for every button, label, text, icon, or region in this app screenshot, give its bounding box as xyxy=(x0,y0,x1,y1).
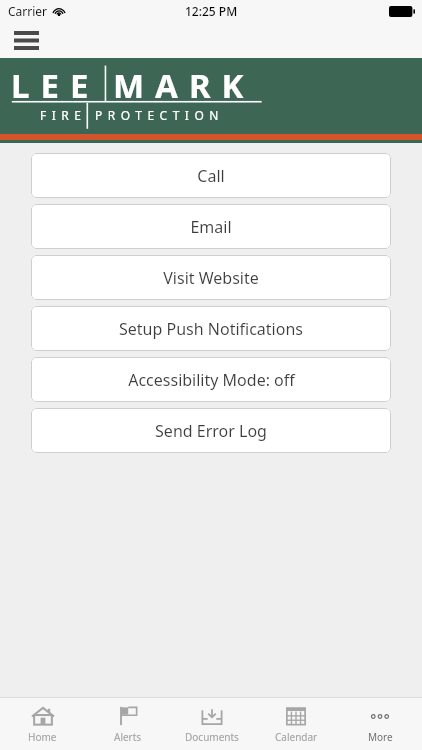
button[interactable]: Visit Website xyxy=(31,255,391,300)
button[interactable]: Email xyxy=(31,204,391,249)
staticText: PROTECTION xyxy=(95,107,224,123)
staticText: Alerts xyxy=(114,730,142,744)
staticText: Home xyxy=(28,730,57,744)
staticText: Setup Push Notifications xyxy=(119,318,303,340)
staticText: Send Error Log xyxy=(155,420,267,442)
button[interactable]: More xyxy=(338,697,422,750)
staticText: Email xyxy=(190,216,232,238)
staticText: Call xyxy=(197,165,225,187)
staticText: MARK xyxy=(113,63,255,108)
button[interactable]: Setup Push Notifications xyxy=(31,306,391,351)
button[interactable]: Calendar xyxy=(254,697,338,750)
staticText: LEE xyxy=(11,63,100,108)
staticText: Documents xyxy=(185,730,239,744)
button[interactable]: Accessibility Mode: off xyxy=(31,357,391,402)
button[interactable]: Documents xyxy=(170,697,254,750)
staticText: More xyxy=(368,730,393,744)
staticText: Calendar xyxy=(275,730,318,744)
button[interactable]: Send Error Log xyxy=(31,408,391,453)
staticText: Carrier xyxy=(8,3,48,19)
staticText: 12:25 PM xyxy=(185,3,238,19)
staticText: Accessibility Mode: off xyxy=(128,369,295,391)
button[interactable]: Call xyxy=(31,153,391,198)
button[interactable]: Home xyxy=(0,697,85,750)
staticText: FIRE xyxy=(40,107,87,123)
staticText: Visit Website xyxy=(163,267,259,289)
button[interactable]: Menu xyxy=(9,25,43,55)
button[interactable]: Alerts xyxy=(85,697,170,750)
